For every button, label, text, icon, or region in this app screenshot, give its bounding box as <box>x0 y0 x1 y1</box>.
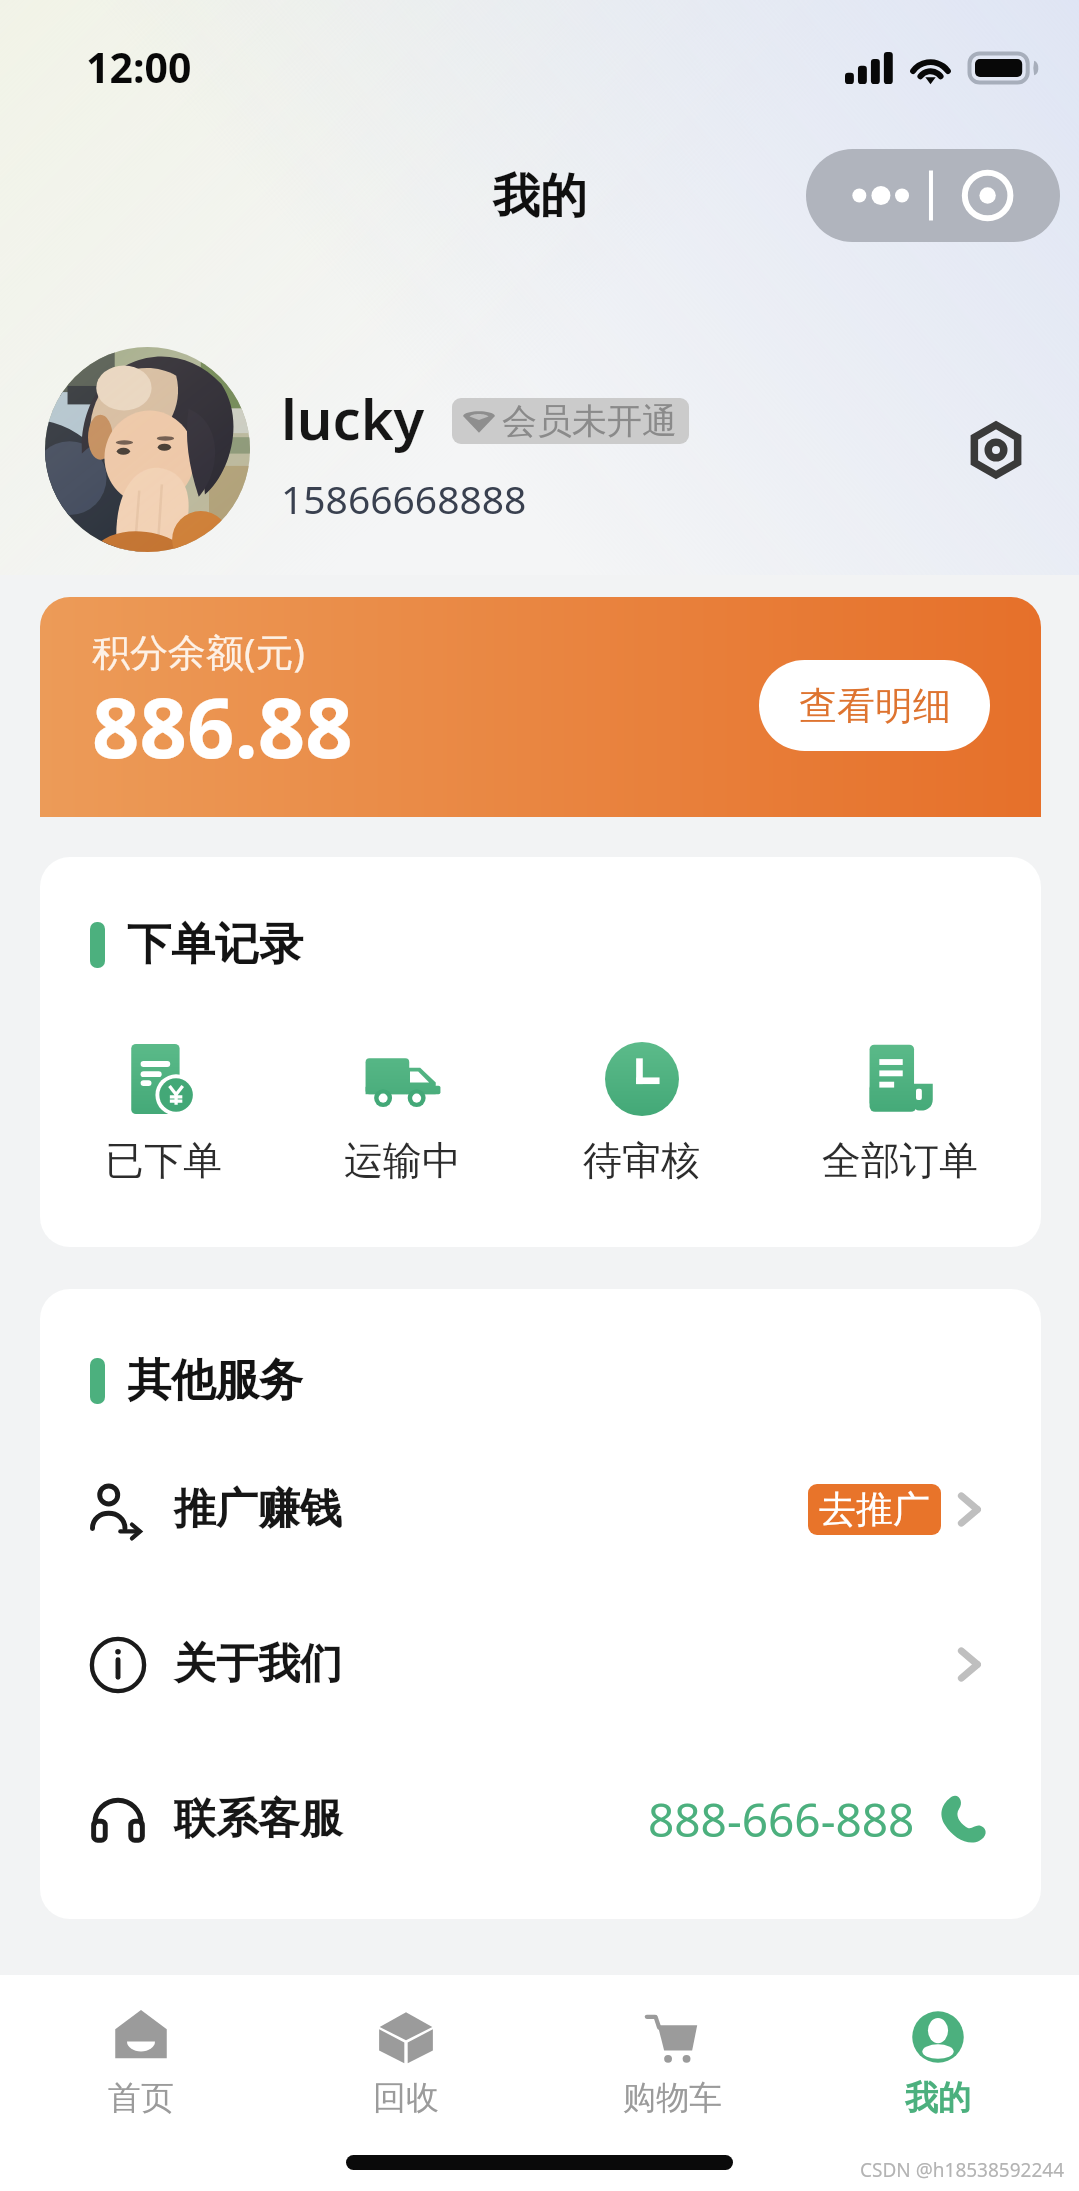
button[interactable]: 全部订单 <box>822 1040 978 1185</box>
button[interactable]: 已下单 <box>105 1040 222 1185</box>
staticText: lucky <box>281 380 425 456</box>
staticText: 我的 <box>493 167 587 226</box>
button[interactable]: 联系客服 <box>40 1742 1041 1897</box>
button[interactable]: 关于我们 <box>40 1587 1041 1742</box>
staticText: 运输中 <box>344 1136 461 1185</box>
button[interactable]: 购物车 <box>539 2009 805 2159</box>
button[interactable]: Settings <box>951 405 1041 495</box>
staticText: 购物车 <box>623 2077 722 2119</box>
staticText: 886.88 <box>92 669 353 782</box>
button[interactable]: 首页 <box>8 2009 273 2159</box>
staticText: 其他服务 <box>127 1353 303 1408</box>
button[interactable]: 积分余额(元) <box>40 597 1041 817</box>
button[interactable]: 回收 <box>273 2009 539 2159</box>
staticText: 去推广 <box>819 1486 930 1533</box>
button[interactable]: Profile photo <box>45 347 250 552</box>
staticText: 关于我们 <box>174 1638 342 1691</box>
button[interactable]: 去推广 <box>808 1484 941 1535</box>
button[interactable]: 查看明细 <box>759 660 990 751</box>
staticText: 会员未开通 <box>502 399 677 443</box>
staticText: 我的 <box>905 2077 971 2119</box>
staticText: 12:00 <box>86 39 192 95</box>
staticText: 全部订单 <box>822 1136 978 1185</box>
button[interactable]: More options <box>806 149 1060 242</box>
button[interactable]: 会员未开通 <box>452 398 689 444</box>
button[interactable]: 推广赚钱 <box>40 1432 1041 1587</box>
staticText: 查看明细 <box>799 682 951 730</box>
staticText: 下单记录 <box>127 917 303 972</box>
button[interactable]: 待审核 <box>583 1040 700 1185</box>
staticText: 回收 <box>373 2077 439 2119</box>
staticText: 15866668888 <box>281 472 527 525</box>
staticText: 积分余额(元) <box>92 625 305 677</box>
staticText: 待审核 <box>583 1136 700 1185</box>
staticText: 推广赚钱 <box>174 1483 342 1536</box>
staticText: CSDN @h18538592244 <box>860 2157 1065 2183</box>
button[interactable]: 运输中 <box>344 1040 461 1185</box>
staticText: 首页 <box>108 2077 174 2119</box>
staticText: 888-666-888 <box>648 1788 915 1851</box>
staticText: 联系客服 <box>174 1793 342 1846</box>
button[interactable]: 我的 <box>805 2009 1071 2159</box>
staticText: 已下单 <box>105 1136 222 1185</box>
